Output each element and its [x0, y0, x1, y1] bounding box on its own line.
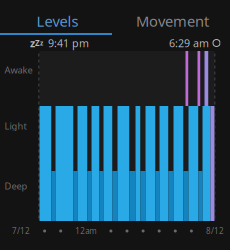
staticText: Z	[35, 38, 40, 48]
staticText: 7/12	[12, 226, 30, 236]
button[interactable]: Movement	[115, 9, 230, 33]
staticText: z	[40, 39, 43, 47]
staticText: Deep	[4, 180, 27, 192]
staticText: 8/12	[206, 226, 224, 236]
staticText: 12am	[75, 226, 96, 236]
staticText: Levels	[36, 11, 78, 31]
staticText: Light	[4, 120, 26, 132]
staticText: Movement	[136, 11, 209, 31]
staticText: z	[30, 36, 35, 50]
staticText: 9:41 pm	[48, 36, 89, 50]
staticText: 6:29 am	[169, 36, 209, 50]
staticText: Awake	[4, 64, 32, 76]
button[interactable]: Levels	[0, 9, 115, 33]
